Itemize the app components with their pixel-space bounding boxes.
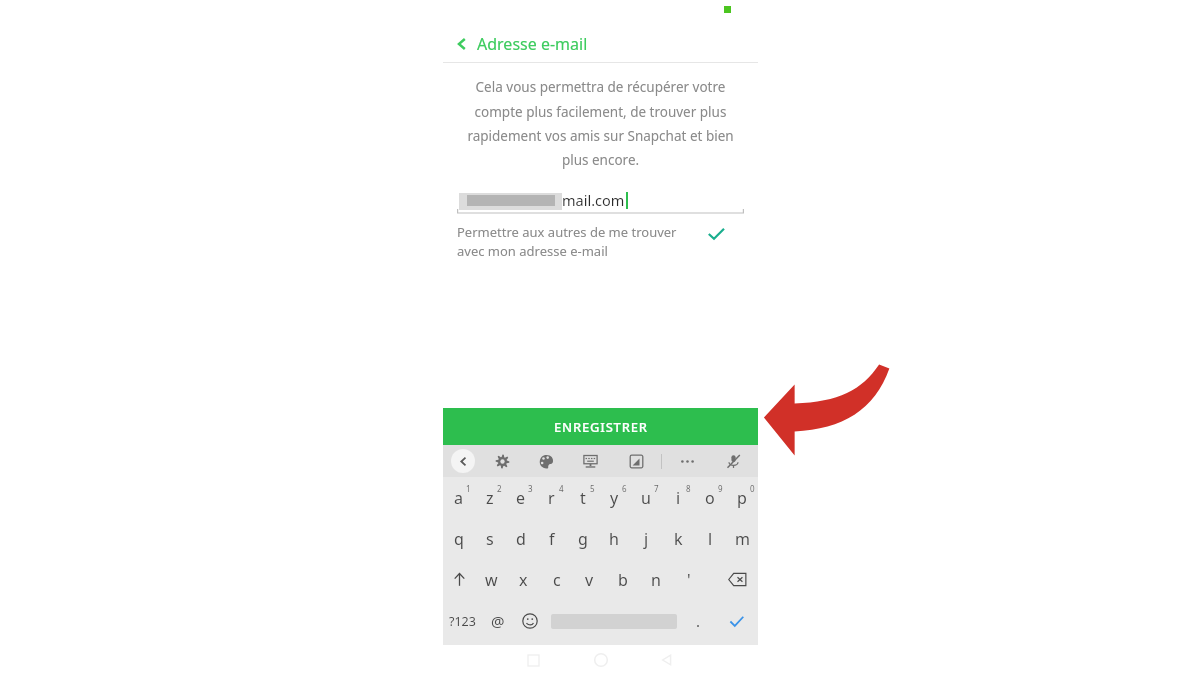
staticText: t	[580, 487, 586, 509]
staticText: o	[705, 487, 715, 509]
button[interactable]: r	[536, 477, 567, 518]
staticText: q	[454, 528, 464, 550]
staticText: m	[735, 528, 750, 550]
staticText: j	[644, 528, 649, 550]
button[interactable]: b	[606, 559, 639, 600]
staticText: g	[578, 528, 588, 550]
button[interactable]: s	[474, 518, 505, 559]
button[interactable]: Delete	[716, 559, 758, 600]
staticText: b	[618, 569, 628, 591]
button[interactable]: mail.com	[457, 183, 744, 217]
staticText: 6	[622, 483, 627, 494]
staticText: h	[609, 528, 619, 550]
staticText: 2	[497, 483, 502, 494]
staticText: ?123	[449, 613, 476, 630]
button[interactable]: n	[639, 559, 672, 600]
other: Enabled	[706, 224, 726, 244]
button[interactable]: y	[598, 477, 630, 518]
staticText: '	[687, 569, 691, 591]
button[interactable]: Resize	[625, 450, 647, 472]
other: Recents	[528, 655, 539, 666]
button[interactable]: .	[682, 600, 714, 642]
button[interactable]: x	[507, 559, 540, 600]
button[interactable]: f	[536, 518, 567, 559]
staticText: @	[491, 611, 505, 631]
staticText: d	[516, 528, 526, 550]
button[interactable]: Keyboard mode	[579, 450, 601, 472]
staticText: n	[651, 569, 661, 591]
other: Annotation arrow	[762, 360, 890, 460]
button[interactable]: Back	[443, 26, 758, 62]
staticText: 4	[559, 483, 564, 494]
other: Back	[455, 37, 469, 51]
button[interactable]: p	[726, 477, 758, 518]
staticText: z	[486, 487, 494, 509]
staticText: u	[641, 487, 651, 509]
staticText: v	[585, 569, 594, 591]
button[interactable]: Emoji	[514, 600, 546, 642]
staticText: ENREGISTRER	[554, 418, 648, 436]
button[interactable]: More options	[676, 450, 698, 472]
staticText: f	[549, 528, 555, 550]
other: Back	[661, 654, 673, 666]
staticText: r	[548, 487, 555, 509]
button[interactable]: g	[567, 518, 598, 559]
button[interactable]: m	[726, 518, 758, 559]
button[interactable]: d	[505, 518, 536, 559]
staticText: 0	[750, 483, 755, 494]
button[interactable]: Close toolbar	[451, 449, 475, 473]
staticText: .	[696, 611, 701, 631]
staticText: a	[454, 487, 463, 509]
button[interactable]: Space	[546, 600, 682, 642]
button[interactable]: j	[630, 518, 662, 559]
button[interactable]: Shift	[443, 559, 475, 600]
button[interactable]: ENREGISTRER	[443, 408, 758, 445]
button[interactable]: Settings	[491, 450, 513, 472]
staticText: Cela vous permettra de récupérer votre c…	[455, 78, 746, 169]
staticText: i	[676, 487, 681, 509]
staticText: w	[485, 569, 498, 591]
staticText: c	[553, 569, 561, 591]
staticText: s	[486, 528, 494, 550]
staticText: k	[674, 528, 683, 550]
staticText: Permettre aux autres de me trouver avec …	[457, 223, 702, 260]
staticText: 9	[718, 483, 723, 494]
staticText: e	[516, 487, 526, 509]
staticText: 7	[654, 483, 659, 494]
staticText: 1	[466, 483, 471, 494]
button[interactable]: Voice input off	[722, 450, 744, 472]
other: Home	[594, 653, 608, 667]
button[interactable]: u	[630, 477, 662, 518]
button[interactable]: h	[598, 518, 630, 559]
staticText: Adresse e-mail	[477, 33, 588, 55]
button[interactable]: c	[540, 559, 573, 600]
button[interactable]: Permettre aux autres de me trouver avec …	[443, 223, 758, 260]
button[interactable]: i	[662, 477, 694, 518]
staticText: 5	[590, 483, 595, 494]
staticText: p	[737, 487, 747, 509]
staticText: mail.com	[562, 190, 625, 210]
button[interactable]: q	[443, 518, 474, 559]
staticText: l	[708, 528, 713, 550]
staticText: y	[610, 487, 619, 509]
staticText: x	[519, 569, 528, 591]
button[interactable]: '	[672, 559, 705, 600]
button[interactable]: z	[474, 477, 505, 518]
button[interactable]: o	[694, 477, 726, 518]
button[interactable]: v	[573, 559, 606, 600]
button[interactable]: a	[443, 477, 474, 518]
button[interactable]: l	[694, 518, 726, 559]
staticText: 3	[528, 483, 533, 494]
button[interactable]: Enter	[714, 600, 758, 642]
button[interactable]: e	[505, 477, 536, 518]
button[interactable]: t	[567, 477, 598, 518]
button[interactable]: Themes	[535, 450, 557, 472]
button[interactable]: @	[482, 600, 514, 642]
button[interactable]: k	[662, 518, 694, 559]
staticText: 8	[686, 483, 691, 494]
button[interactable]: ?123	[443, 600, 482, 642]
button[interactable]: w	[475, 559, 507, 600]
